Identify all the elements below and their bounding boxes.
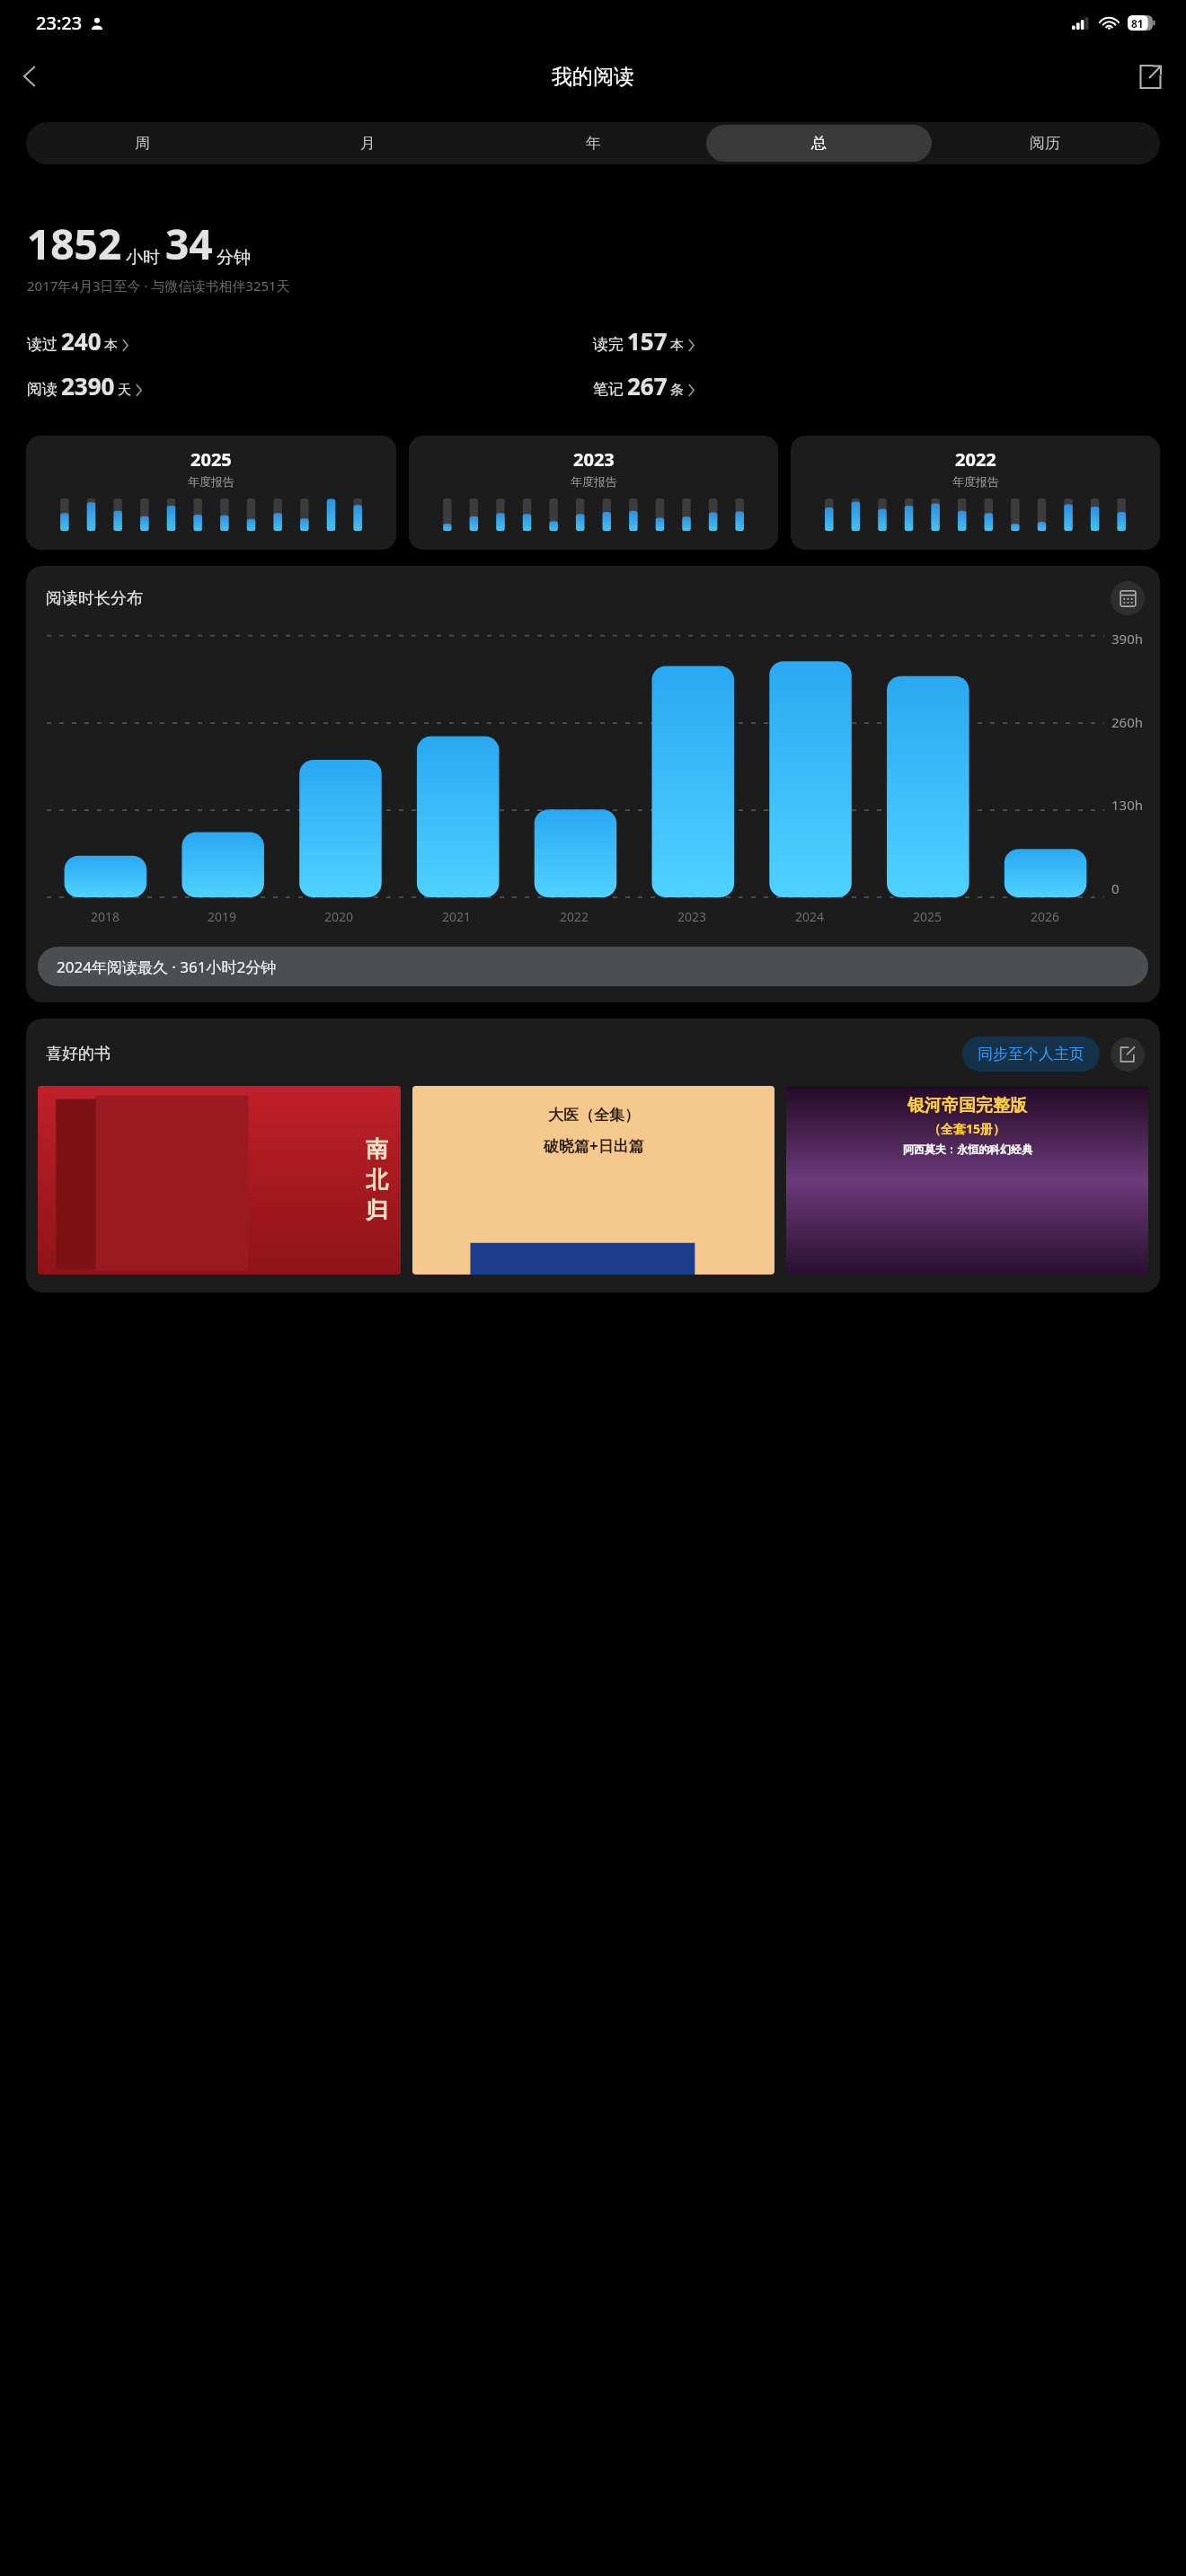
staticText: 2022 bbox=[955, 447, 996, 472]
button[interactable]: 大医（全集） bbox=[412, 1086, 774, 1275]
staticText: 银河帝国完整版 bbox=[907, 1095, 1027, 1116]
staticText: 年度报告 bbox=[952, 474, 999, 489]
button[interactable]: 阅历 bbox=[932, 125, 1157, 162]
button[interactable]: 周 bbox=[29, 125, 255, 162]
staticText: 390h bbox=[1111, 630, 1144, 648]
button[interactable]: 银河帝国完整版 bbox=[786, 1086, 1148, 1275]
staticText: 2390 bbox=[61, 370, 115, 401]
staticText: 2021 bbox=[442, 908, 472, 925]
staticText: 阅历 bbox=[1030, 134, 1060, 153]
staticText: 条 bbox=[670, 382, 684, 399]
staticText: 1852 bbox=[27, 216, 122, 272]
staticText: 130h bbox=[1111, 796, 1144, 814]
staticText: 阿西莫夫：永恒的科幻经典 bbox=[903, 1142, 1032, 1156]
staticText: 周 bbox=[135, 134, 150, 153]
staticText: 2025 bbox=[913, 908, 943, 925]
button[interactable]: Share bbox=[1127, 53, 1173, 100]
staticText: 天 bbox=[118, 382, 131, 399]
staticText: 南 北 归 bbox=[366, 1135, 388, 1225]
button[interactable]: 2023 bbox=[409, 436, 778, 550]
staticText: 破晓篇+日出篇 bbox=[544, 1135, 644, 1156]
staticText: 2023 bbox=[573, 447, 615, 472]
staticText: 2017年4月3日至今 · 与微信读书相伴3251天 bbox=[27, 277, 290, 295]
button[interactable]: Calendar bbox=[1111, 581, 1145, 615]
staticText: 157 bbox=[627, 325, 668, 357]
staticText: 2025 bbox=[190, 447, 232, 472]
staticText: （全套15册） bbox=[928, 1120, 1006, 1137]
staticText: 240 bbox=[61, 325, 102, 357]
staticText: 260h bbox=[1111, 713, 1144, 731]
staticText: 总 bbox=[811, 134, 827, 153]
staticText: 2020 bbox=[324, 908, 354, 925]
button[interactable]: 年 bbox=[481, 125, 706, 162]
staticText: 267 bbox=[627, 370, 668, 401]
button[interactable]: 同步至个人主页 bbox=[962, 1037, 1100, 1072]
staticText: 小时 bbox=[126, 247, 160, 269]
button[interactable]: 笔记 bbox=[593, 370, 1159, 401]
staticText: 年 bbox=[586, 134, 601, 153]
button[interactable]: 南 北 归 bbox=[38, 1086, 401, 1275]
button[interactable]: 2022 bbox=[791, 436, 1160, 550]
button[interactable]: 2025 bbox=[26, 436, 396, 550]
button[interactable]: 总 bbox=[706, 125, 932, 162]
staticText: 月 bbox=[360, 134, 376, 153]
staticText: 2023 bbox=[677, 908, 707, 925]
staticText: 大医（全集） bbox=[548, 1106, 640, 1125]
staticText: 2019 bbox=[208, 908, 237, 925]
staticText: 本 bbox=[104, 337, 118, 354]
button[interactable]: Edit bbox=[1111, 1037, 1145, 1072]
staticText: 34 bbox=[165, 216, 213, 272]
button[interactable]: 月 bbox=[255, 125, 481, 162]
button[interactable]: 读完 bbox=[593, 325, 1159, 357]
staticText: 0 bbox=[1111, 879, 1120, 897]
button[interactable]: Back bbox=[5, 51, 56, 101]
staticText: 81 bbox=[1131, 16, 1144, 31]
staticText: 阅读 bbox=[27, 380, 58, 399]
staticText: 2024 bbox=[795, 908, 825, 925]
button[interactable]: 读过 bbox=[27, 325, 593, 357]
button[interactable]: 2024年阅读最久 · 361小时2分钟 bbox=[38, 947, 1148, 986]
button[interactable]: 阅读 bbox=[27, 370, 593, 401]
staticText: 年度报告 bbox=[188, 474, 235, 489]
staticText: 2026 bbox=[1031, 908, 1060, 925]
staticText: 23:23 bbox=[36, 11, 83, 35]
staticText: 2024年阅读最久 · 361小时2分钟 bbox=[57, 957, 277, 977]
staticText: 分钟 bbox=[217, 247, 251, 269]
staticText: 年度报告 bbox=[571, 474, 617, 489]
staticText: 喜好的书 bbox=[46, 1044, 111, 1064]
staticText: 2022 bbox=[560, 908, 589, 925]
staticText: 读过 bbox=[27, 335, 58, 354]
staticText: 2018 bbox=[91, 908, 120, 925]
staticText: 本 bbox=[670, 337, 684, 354]
staticText: 同步至个人主页 bbox=[978, 1045, 1084, 1063]
staticText: 笔记 bbox=[593, 380, 624, 399]
staticText: 读完 bbox=[593, 335, 624, 354]
staticText: 阅读时长分布 bbox=[46, 588, 143, 609]
staticText: 我的阅读 bbox=[552, 64, 634, 90]
